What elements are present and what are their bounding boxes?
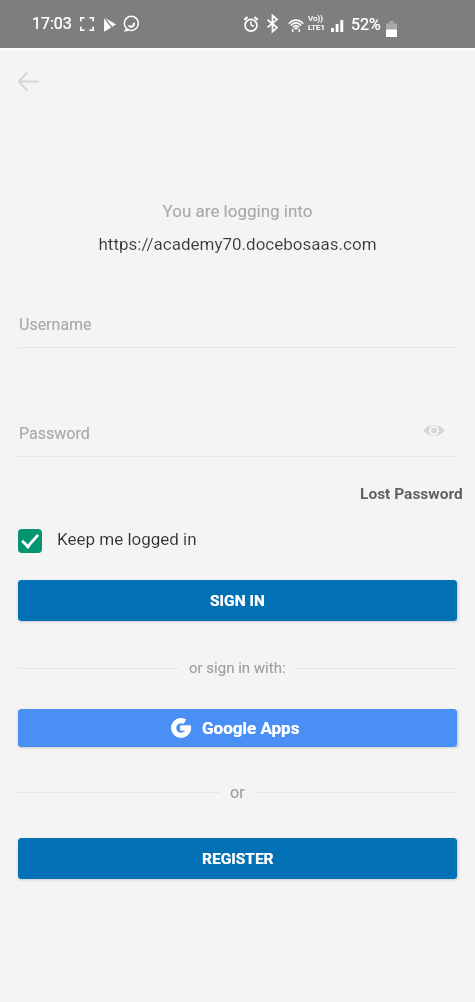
staticText: or [230, 783, 245, 802]
button[interactable]: Show password [419, 415, 449, 445]
button[interactable]: Google Apps [18, 709, 457, 747]
staticText: Keep me logged in [57, 529, 197, 549]
button[interactable]: Lost Password [348, 482, 475, 506]
staticText: Vo)) [308, 14, 324, 23]
staticText: Google Apps [202, 718, 300, 738]
staticText: or sign in with: [189, 659, 286, 677]
button[interactable]: Back [6, 59, 51, 104]
button[interactable]: REGISTER [18, 838, 457, 879]
staticText: You are logging into [0, 201, 475, 221]
staticText: 52% [351, 15, 381, 34]
button[interactable]: Keep me logged in [18, 526, 197, 554]
staticText: Password [19, 424, 90, 443]
staticText: Username [19, 315, 92, 334]
button[interactable]: SIGN IN [18, 580, 457, 621]
staticText: Lost Password [360, 485, 463, 503]
staticText: https://academy70.docebosaas.com [0, 234, 475, 254]
staticText: REGISTER [202, 850, 274, 868]
staticText: SIGN IN [210, 592, 265, 610]
staticText: LTE1 [308, 23, 326, 32]
staticText: 17:03 [32, 14, 72, 33]
